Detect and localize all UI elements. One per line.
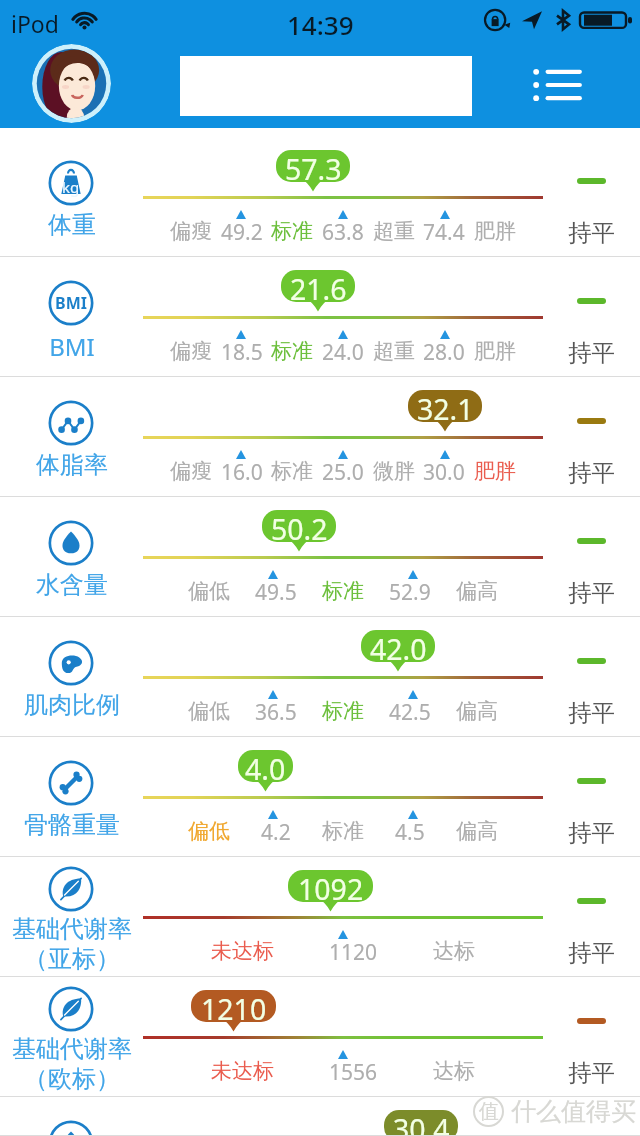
button[interactable]: 体脂率 bbox=[0, 377, 640, 497]
staticText: 基础代谢率 bbox=[12, 1034, 132, 1064]
staticText: 偏高 bbox=[456, 698, 498, 724]
staticText: 57.3 bbox=[285, 150, 342, 182]
staticText: 24.0 bbox=[322, 338, 364, 364]
button[interactable]: 水含量 bbox=[0, 497, 640, 617]
staticText: 4.2 bbox=[261, 818, 291, 844]
staticText: 1092 bbox=[298, 870, 364, 902]
staticText: 标准 bbox=[271, 218, 313, 244]
staticText: 持平 bbox=[568, 338, 615, 368]
staticText: iPod bbox=[11, 8, 59, 39]
staticText: 达标 bbox=[433, 1058, 475, 1084]
staticText: 标准 bbox=[322, 578, 364, 604]
staticText: 偏高 bbox=[456, 818, 498, 844]
staticText: 基础代谢率 bbox=[12, 914, 132, 944]
staticText: 偏低 bbox=[188, 818, 230, 844]
staticText: 偏瘦 bbox=[170, 338, 212, 364]
button[interactable]: Menu bbox=[526, 61, 590, 109]
staticText: 值 bbox=[479, 1099, 499, 1124]
button[interactable]: BMI bbox=[0, 257, 640, 377]
button[interactable]: Profile bbox=[32, 44, 111, 123]
staticText: BMI bbox=[49, 330, 95, 363]
staticText: 偏瘦 bbox=[170, 218, 212, 244]
staticText: 什么值得买 bbox=[511, 1096, 636, 1127]
staticText: 28.0 bbox=[423, 338, 465, 364]
staticText: kg bbox=[62, 177, 80, 197]
staticText: 持平 bbox=[568, 698, 615, 728]
staticText: 未达标 bbox=[211, 938, 274, 964]
staticText: 标准 bbox=[271, 338, 313, 364]
staticText: 1556 bbox=[329, 1058, 378, 1084]
staticText: 74.4 bbox=[423, 218, 465, 244]
staticText: 持平 bbox=[568, 458, 615, 488]
staticText: 63.8 bbox=[322, 218, 364, 244]
staticText: 持平 bbox=[568, 578, 615, 608]
staticText: 49.2 bbox=[221, 218, 263, 244]
staticText: 未达标 bbox=[211, 1058, 274, 1084]
staticText: 偏高 bbox=[456, 578, 498, 604]
staticText: 16.0 bbox=[221, 458, 263, 484]
staticText: 偏瘦 bbox=[170, 458, 212, 484]
button[interactable]: 基础代谢率 bbox=[0, 977, 640, 1097]
staticText: 4.5 bbox=[395, 818, 425, 844]
button[interactable]: 基础代谢率 bbox=[0, 857, 640, 977]
staticText: BMI bbox=[55, 292, 87, 314]
staticText: 肥胖 bbox=[474, 218, 516, 244]
staticText: 持平 bbox=[568, 818, 615, 848]
staticText: 超重 bbox=[373, 338, 415, 364]
staticText: （欧标） bbox=[24, 1064, 120, 1094]
staticText: 42.5 bbox=[389, 698, 431, 724]
staticText: 25.0 bbox=[322, 458, 364, 484]
staticText: 1120 bbox=[329, 938, 378, 964]
button[interactable]: 内脏脂肪 bbox=[0, 1097, 640, 1136]
staticText: 标准 bbox=[322, 818, 364, 844]
staticText: 偏低 bbox=[188, 698, 230, 724]
staticText: 肌肉比例 bbox=[24, 690, 120, 720]
staticText: 1210 bbox=[201, 990, 267, 1022]
staticText: 30.4 bbox=[393, 1110, 450, 1136]
button[interactable]: 肌肉比例 bbox=[0, 617, 640, 737]
staticText: 32.1 bbox=[417, 390, 474, 422]
staticText: 4.0 bbox=[245, 750, 286, 782]
staticText: 微胖 bbox=[373, 458, 415, 484]
staticText: 14:39 bbox=[287, 7, 354, 42]
staticText: 标准 bbox=[322, 698, 364, 724]
staticText: 体重 bbox=[48, 210, 96, 240]
staticText: 超重 bbox=[373, 218, 415, 244]
staticText: 21.6 bbox=[290, 270, 347, 302]
staticText: 50.2 bbox=[271, 510, 328, 542]
staticText: 偏低 bbox=[188, 578, 230, 604]
staticText: 标准 bbox=[271, 458, 313, 484]
staticText: 36.5 bbox=[255, 698, 297, 724]
staticText: 肥胖 bbox=[474, 338, 516, 364]
staticText: 达标 bbox=[433, 938, 475, 964]
staticText: 持平 bbox=[568, 938, 615, 968]
staticText: 肥胖 bbox=[474, 458, 516, 484]
button[interactable]: 骨骼重量 bbox=[0, 737, 640, 857]
staticText: （亚标） bbox=[24, 944, 120, 974]
button[interactable]: kg bbox=[0, 128, 640, 257]
staticText: 30.0 bbox=[423, 458, 465, 484]
staticText: 18.5 bbox=[221, 338, 263, 364]
staticText: 水含量 bbox=[36, 570, 108, 600]
staticText: 持平 bbox=[568, 1058, 615, 1088]
staticText: 42.0 bbox=[370, 630, 427, 662]
staticText: 49.5 bbox=[255, 578, 297, 604]
staticText: 持平 bbox=[568, 218, 615, 248]
staticText: 52.9 bbox=[389, 578, 431, 604]
staticText: 骨骼重量 bbox=[24, 810, 120, 840]
staticText: 体脂率 bbox=[36, 450, 108, 480]
